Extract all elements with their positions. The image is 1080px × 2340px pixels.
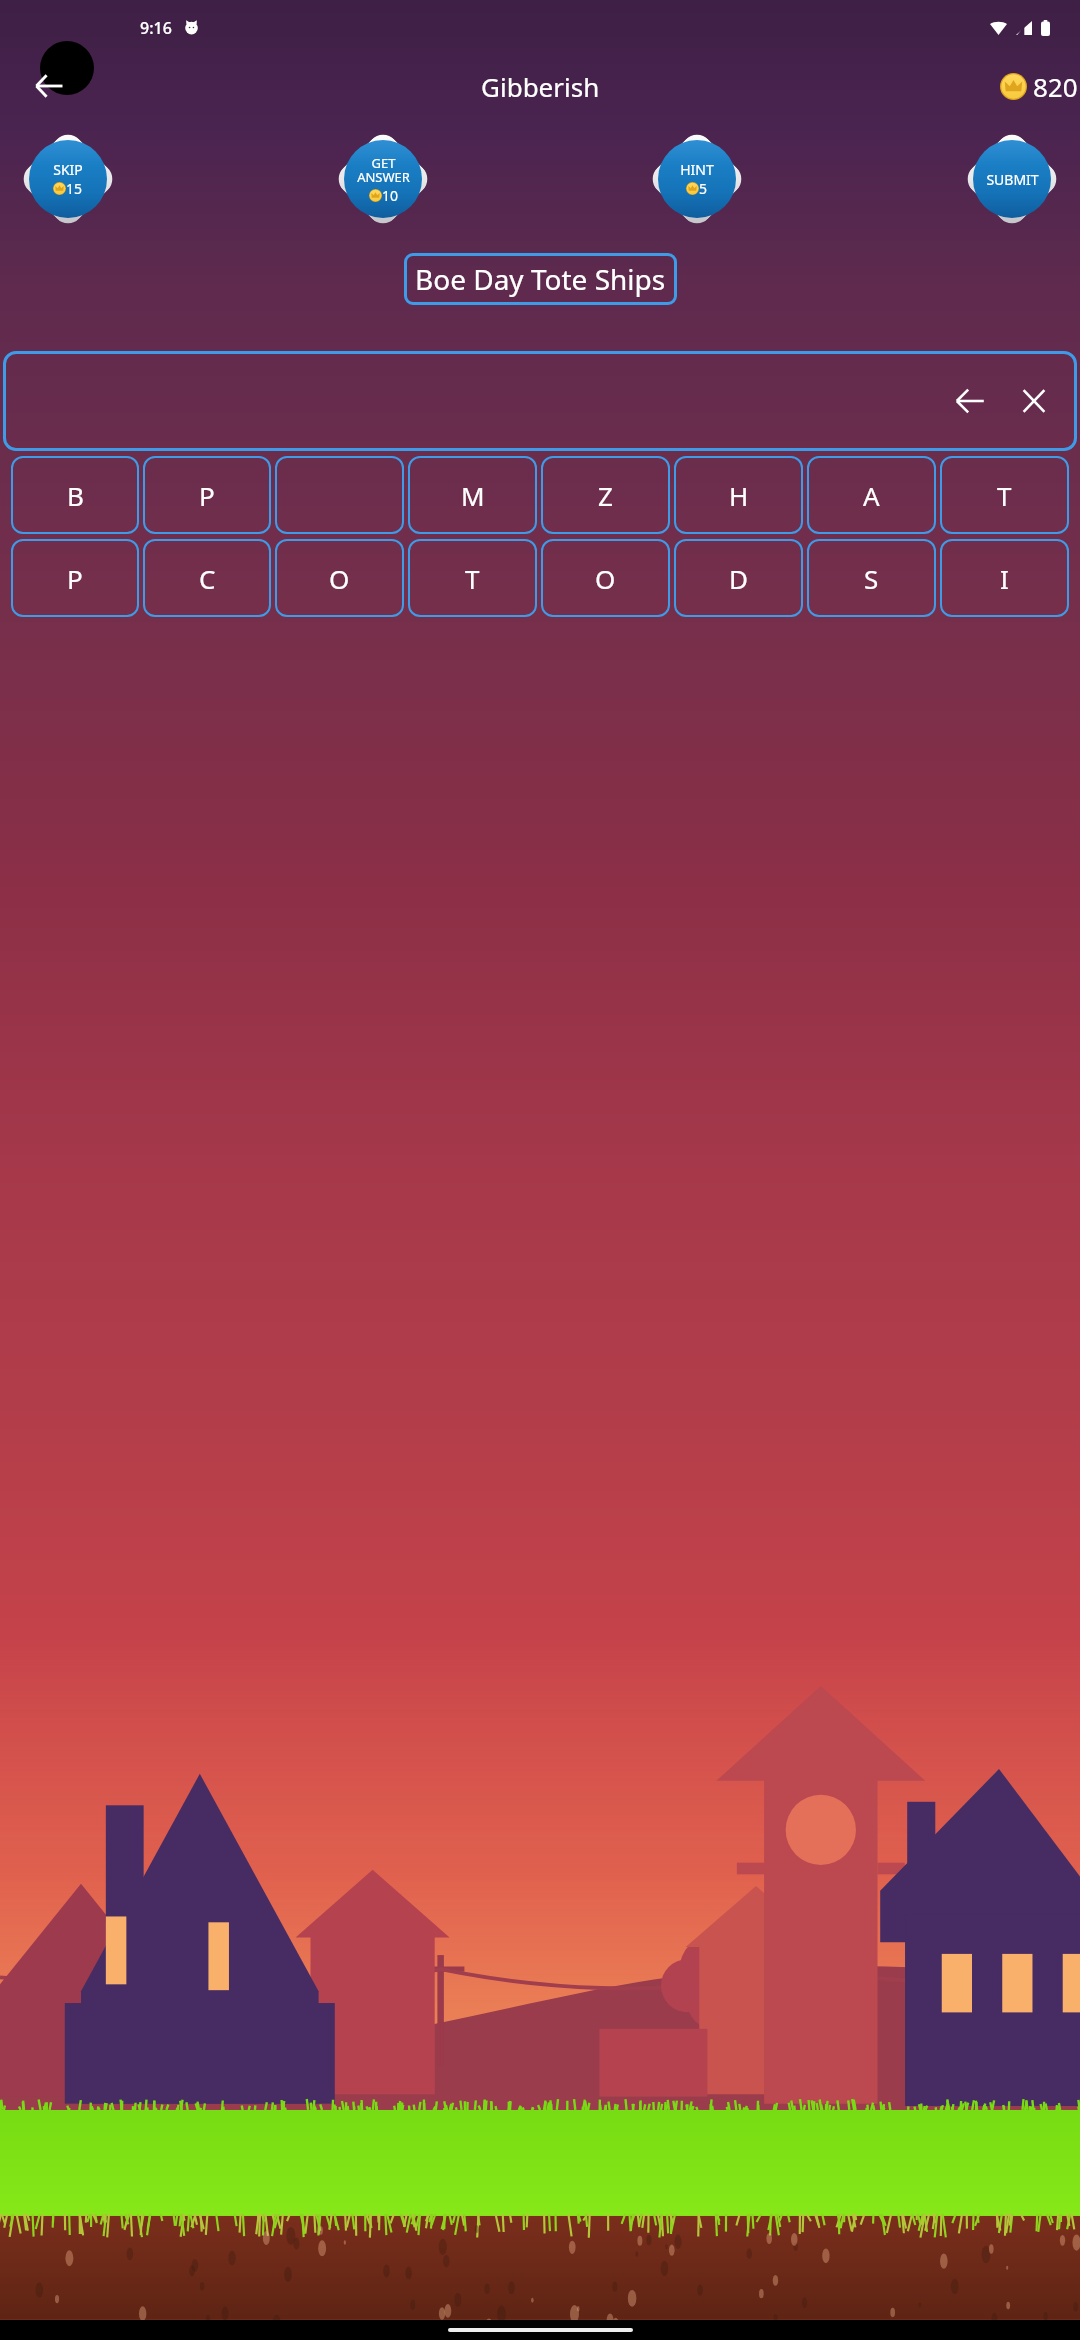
staticText: 820 bbox=[1033, 69, 1078, 104]
staticText: Z bbox=[598, 478, 613, 513]
button[interactable]: Clear bbox=[1011, 378, 1057, 424]
button[interactable]: Z bbox=[541, 456, 670, 534]
staticText: Gibberish bbox=[481, 69, 600, 104]
button[interactable] bbox=[275, 456, 404, 534]
button[interactable]: O bbox=[275, 539, 404, 617]
staticText: O bbox=[329, 561, 350, 596]
button[interactable]: Backspace bbox=[3, 351, 1077, 451]
staticText: D bbox=[729, 561, 748, 596]
staticText: 5 bbox=[699, 179, 708, 198]
button[interactable]: D bbox=[674, 539, 803, 617]
staticText: S bbox=[864, 561, 879, 596]
button[interactable]: M bbox=[408, 456, 537, 534]
staticText: 10 bbox=[382, 186, 399, 205]
button[interactable]: HINT bbox=[645, 127, 749, 231]
staticText: C bbox=[199, 561, 216, 596]
button[interactable]: Back bbox=[22, 59, 76, 113]
button[interactable]: SKIP bbox=[16, 127, 120, 231]
button[interactable]: H bbox=[674, 456, 803, 534]
button[interactable]: I bbox=[940, 539, 1069, 617]
staticText: HINT bbox=[680, 160, 714, 179]
button[interactable]: O bbox=[541, 539, 670, 617]
staticText: I bbox=[1000, 561, 1009, 596]
button[interactable]: P bbox=[11, 539, 139, 617]
staticText: H bbox=[729, 478, 749, 513]
staticText: A bbox=[863, 478, 880, 513]
staticText: T bbox=[997, 478, 1012, 513]
button[interactable]: 820 bbox=[1000, 69, 1078, 104]
button[interactable]: Boe Day Tote Ships bbox=[415, 260, 666, 298]
staticText: P bbox=[199, 478, 215, 513]
button[interactable]: A bbox=[807, 456, 936, 534]
button[interactable]: B bbox=[11, 456, 139, 534]
button[interactable]: T bbox=[408, 539, 537, 617]
staticText: GET ANSWER bbox=[357, 154, 410, 186]
staticText: SKIP bbox=[53, 160, 83, 179]
button[interactable]: Backspace bbox=[947, 378, 993, 424]
staticText: O bbox=[595, 561, 616, 596]
button[interactable]: S bbox=[807, 539, 936, 617]
staticText: 9:16 bbox=[140, 17, 172, 39]
button[interactable]: C bbox=[143, 539, 271, 617]
staticText: M bbox=[461, 478, 485, 513]
button[interactable]: P bbox=[143, 456, 271, 534]
staticText: B bbox=[67, 478, 84, 513]
staticText: T bbox=[465, 561, 480, 596]
button[interactable]: SUBMIT bbox=[960, 127, 1064, 231]
button[interactable]: T bbox=[940, 456, 1069, 534]
staticText: SUBMIT bbox=[986, 170, 1039, 189]
staticText: Boe Day Tote Ships bbox=[415, 260, 666, 298]
staticText: P bbox=[67, 561, 83, 596]
button[interactable]: GET ANSWER bbox=[331, 127, 435, 231]
staticText: 15 bbox=[66, 179, 83, 198]
